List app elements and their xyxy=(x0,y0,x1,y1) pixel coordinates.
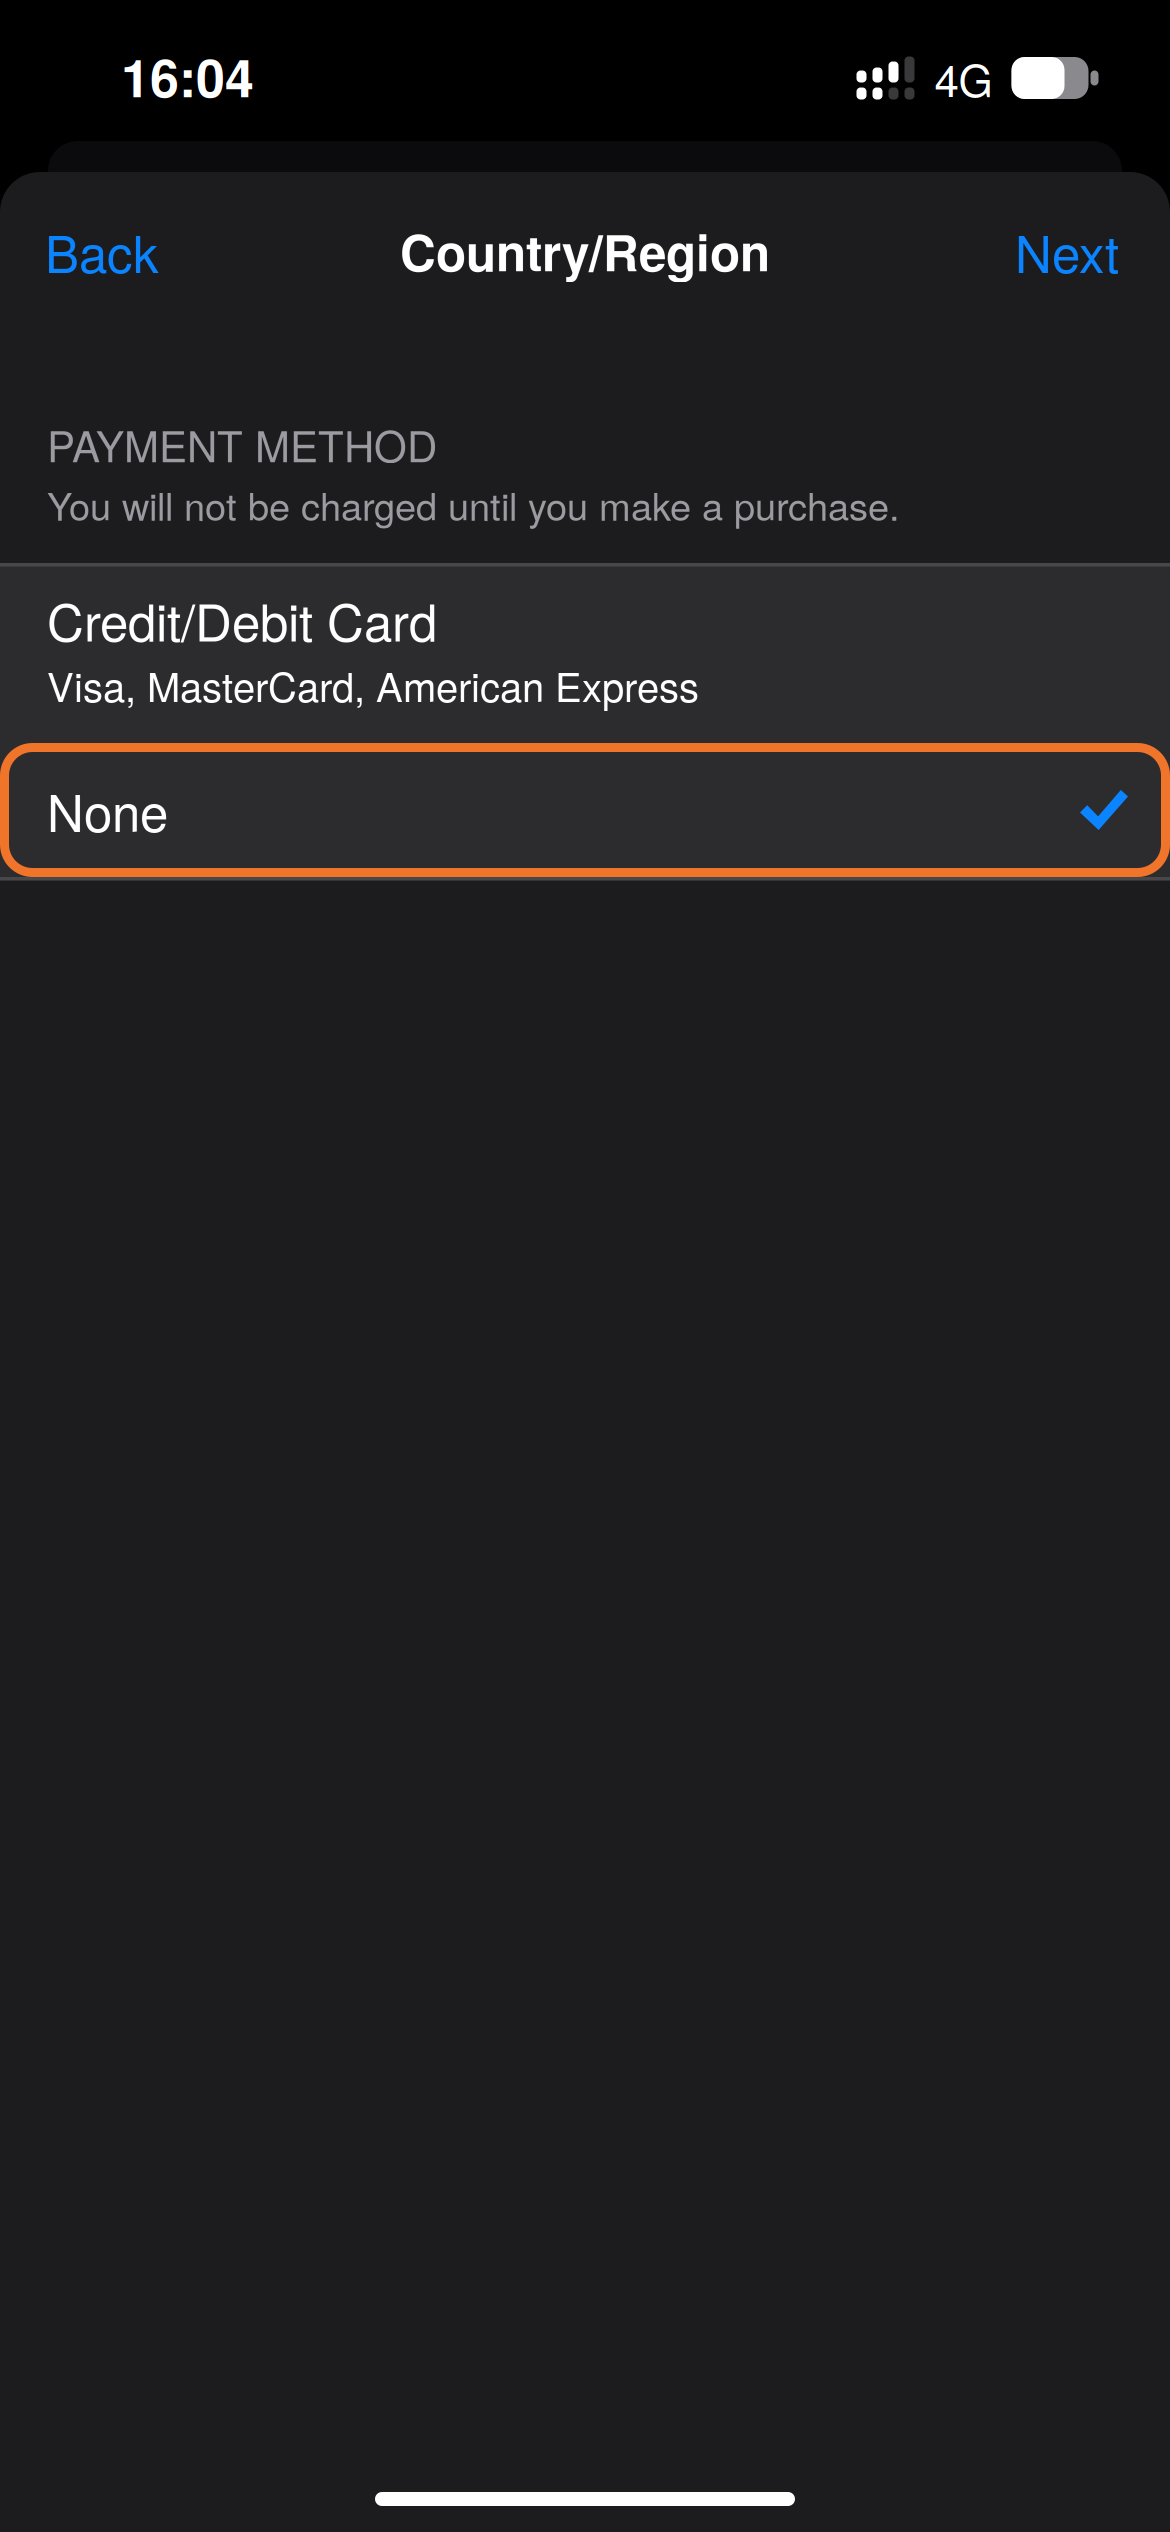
staticText: 4G xyxy=(934,46,992,109)
staticText: Credit/Debit Card xyxy=(47,583,437,656)
button[interactable]: None xyxy=(0,743,1170,877)
button[interactable]: Credit/Debit Card xyxy=(0,563,1170,743)
staticText: 16:04 xyxy=(121,39,254,113)
staticText: You will not be charged until you make a… xyxy=(47,477,900,531)
staticText: PAYMENT METHOD xyxy=(47,414,437,474)
staticText: Country/Region xyxy=(400,216,770,286)
staticText: Next xyxy=(1015,214,1119,287)
staticText: None xyxy=(47,773,168,846)
button[interactable]: Next xyxy=(975,172,1170,330)
staticText: Back xyxy=(45,214,159,287)
button[interactable]: Back xyxy=(0,172,199,330)
staticText: Visa, MasterCard, American Express xyxy=(47,656,699,713)
